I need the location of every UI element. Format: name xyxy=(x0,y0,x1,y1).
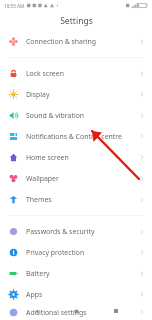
staticText: Themes xyxy=(26,195,52,204)
button[interactable]: Display xyxy=(0,84,152,105)
button[interactable]: Notifications & Control centre xyxy=(0,126,152,147)
button[interactable]: Battery xyxy=(0,263,152,284)
button[interactable]: Recent apps xyxy=(96,302,136,320)
button[interactable]: Home screen xyxy=(0,147,152,168)
button[interactable]: Home xyxy=(56,302,96,320)
button[interactable]: Privacy protection xyxy=(0,242,152,263)
staticText: Sound & vibration xyxy=(26,111,85,120)
staticText: 10:55 AM xyxy=(4,3,25,9)
staticText: Additional settings xyxy=(26,308,87,317)
staticText: Settings xyxy=(60,15,93,27)
staticText: Battery xyxy=(26,269,50,278)
button[interactable]: Themes xyxy=(0,189,152,210)
staticText: Wallpaper xyxy=(26,174,59,183)
staticText: Notifications & Control centre xyxy=(26,132,122,141)
button[interactable]: Additional settings xyxy=(0,305,152,320)
staticText: Connection & sharing xyxy=(26,37,97,46)
staticText: Home screen xyxy=(26,153,69,162)
button[interactable]: Apps xyxy=(0,284,152,305)
button[interactable]: Connection & sharing xyxy=(0,31,152,52)
staticText: Lock screen xyxy=(26,69,64,78)
button[interactable]: Back xyxy=(16,302,56,320)
staticText: Passwords & security xyxy=(26,227,95,236)
button[interactable]: Sound & vibration xyxy=(0,105,152,126)
button[interactable]: Passwords & security xyxy=(0,221,152,242)
button[interactable]: Lock screen xyxy=(0,63,152,84)
button[interactable]: Wallpaper xyxy=(0,168,152,189)
staticText: Display xyxy=(26,90,50,99)
staticText: Privacy protection xyxy=(26,248,85,257)
staticText: Apps xyxy=(26,290,43,299)
